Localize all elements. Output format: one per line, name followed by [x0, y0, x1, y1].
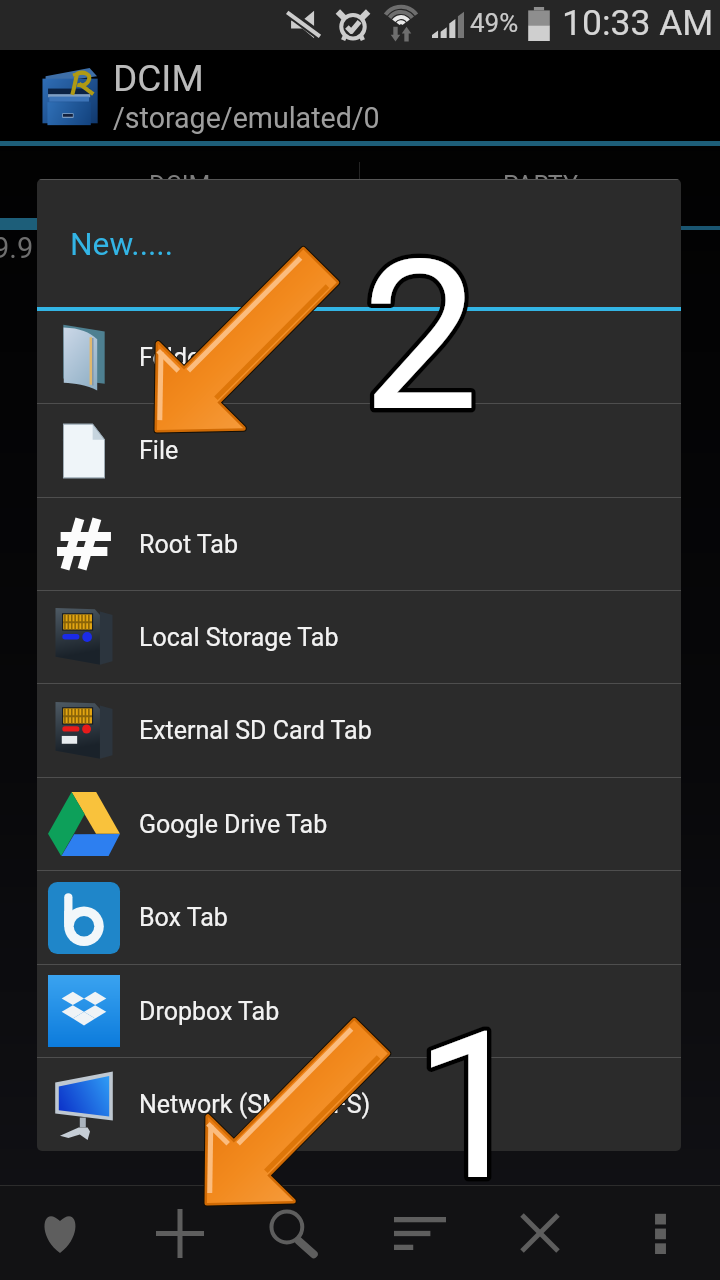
staticText: New.....	[70, 226, 174, 263]
button[interactable]: DCIM	[0, 50, 720, 141]
button[interactable]: Close	[480, 1186, 600, 1280]
staticText: 2	[362, 215, 479, 459]
button[interactable]: Sort	[360, 1186, 480, 1280]
staticText: 2	[362, 215, 479, 459]
staticText: Box Tab	[139, 903, 228, 932]
button[interactable]: DCIM	[0, 148, 359, 202]
button[interactable]: Box Tab	[37, 871, 681, 964]
button[interactable]: Bookmarks	[0, 1186, 120, 1280]
staticText: Network (SMB/CIFS)	[139, 1090, 371, 1119]
staticText: Local Storage Tab	[139, 623, 339, 652]
staticText: Google Drive Tab	[139, 810, 328, 839]
staticText: Folder	[139, 343, 209, 372]
staticText: 10:33 AM	[562, 2, 714, 44]
button[interactable]: Search	[240, 1186, 360, 1280]
button[interactable]: Google Drive Tab	[37, 778, 681, 870]
staticText: /storage/emulated/0	[113, 101, 380, 135]
staticText: DCIM	[113, 57, 204, 100]
button[interactable]: Network (SMB/CIFS)	[37, 1058, 681, 1151]
staticText: Dropbox Tab	[139, 997, 280, 1026]
button[interactable]: Dropbox Tab	[37, 965, 681, 1057]
staticText: PARTY	[503, 171, 578, 200]
staticText: DCIM	[149, 171, 211, 200]
button[interactable]: More options	[600, 1186, 720, 1280]
staticText: 1	[414, 987, 530, 1227]
button[interactable]: Root Tab	[37, 498, 681, 590]
button[interactable]: PARTY	[360, 148, 720, 202]
button[interactable]: New	[120, 1186, 240, 1280]
staticText: 1	[414, 987, 530, 1227]
staticText: Root Tab	[139, 530, 238, 559]
staticText: File	[139, 436, 179, 465]
button[interactable]: External SD Card Tab	[37, 684, 681, 777]
button[interactable]: File	[37, 404, 681, 497]
staticText: External SD Card Tab	[139, 716, 372, 745]
button[interactable]: Local Storage Tab	[37, 591, 681, 683]
staticText: 49%	[470, 8, 519, 38]
staticText: 9.9	[0, 231, 34, 265]
button[interactable]: Folder	[37, 311, 681, 403]
